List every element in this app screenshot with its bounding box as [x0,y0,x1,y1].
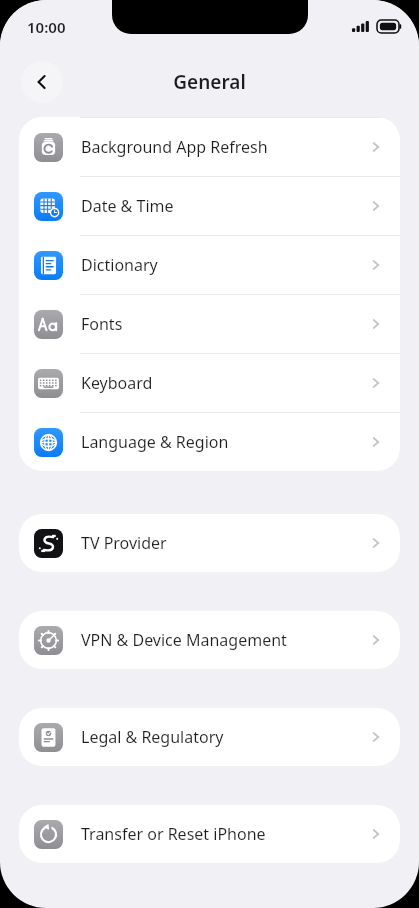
staticText: 10:00 [27,17,66,37]
button[interactable]: Legal & Regulatory [19,708,400,766]
button[interactable]: Date & Time [19,177,400,235]
staticText: Language & Region [81,431,229,453]
staticText: Fonts [81,313,123,335]
button[interactable]: Transfer or Reset iPhone [19,805,400,863]
staticText: General [0,69,419,95]
staticText: TV Provider [81,532,167,554]
button[interactable]: TV Provider [19,514,400,572]
staticText: Legal & Regulatory [81,726,224,748]
button[interactable]: Dictionary [19,236,400,294]
button[interactable]: Back [21,61,63,103]
button[interactable]: Language & Region [19,413,400,471]
staticText: Background App Refresh [81,136,268,158]
staticText: Keyboard [81,372,153,394]
staticText: Transfer or Reset iPhone [81,823,266,845]
button[interactable]: VPN & Device Management [19,611,400,669]
staticText: Date & Time [81,195,174,217]
staticText: VPN & Device Management [81,629,287,651]
button[interactable]: Keyboard [19,354,400,412]
button[interactable]: Background App Refresh [19,118,400,176]
staticText: Dictionary [81,254,158,276]
button[interactable]: Fonts [19,295,400,353]
